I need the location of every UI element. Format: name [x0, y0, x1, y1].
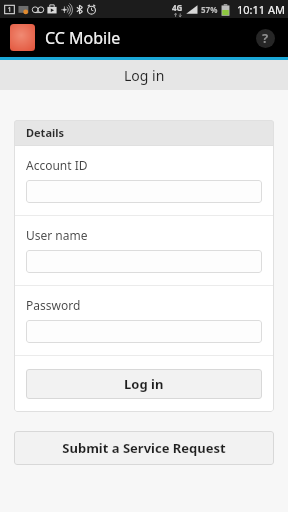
- staticText: CC Mobile: [45, 27, 121, 49]
- staticText: 10:11 AM: [237, 2, 285, 17]
- staticText: Log in: [124, 66, 165, 85]
- staticText: ?: [262, 29, 269, 47]
- button[interactable]: [26, 180, 262, 203]
- button[interactable]: Help: [250, 23, 280, 53]
- staticText: 4G: [172, 2, 183, 13]
- staticText: Submit a Service Request: [62, 439, 226, 457]
- staticText: 57%: [201, 4, 218, 15]
- button[interactable]: Submit a Service Request: [14, 431, 274, 465]
- staticText: Password: [26, 297, 81, 313]
- button[interactable]: Log in: [26, 369, 262, 399]
- button[interactable]: [26, 250, 262, 273]
- button[interactable]: [26, 320, 262, 343]
- staticText: Log in: [124, 375, 164, 393]
- staticText: Details: [26, 125, 65, 140]
- staticText: User name: [26, 227, 88, 243]
- staticText: Account ID: [26, 157, 88, 173]
